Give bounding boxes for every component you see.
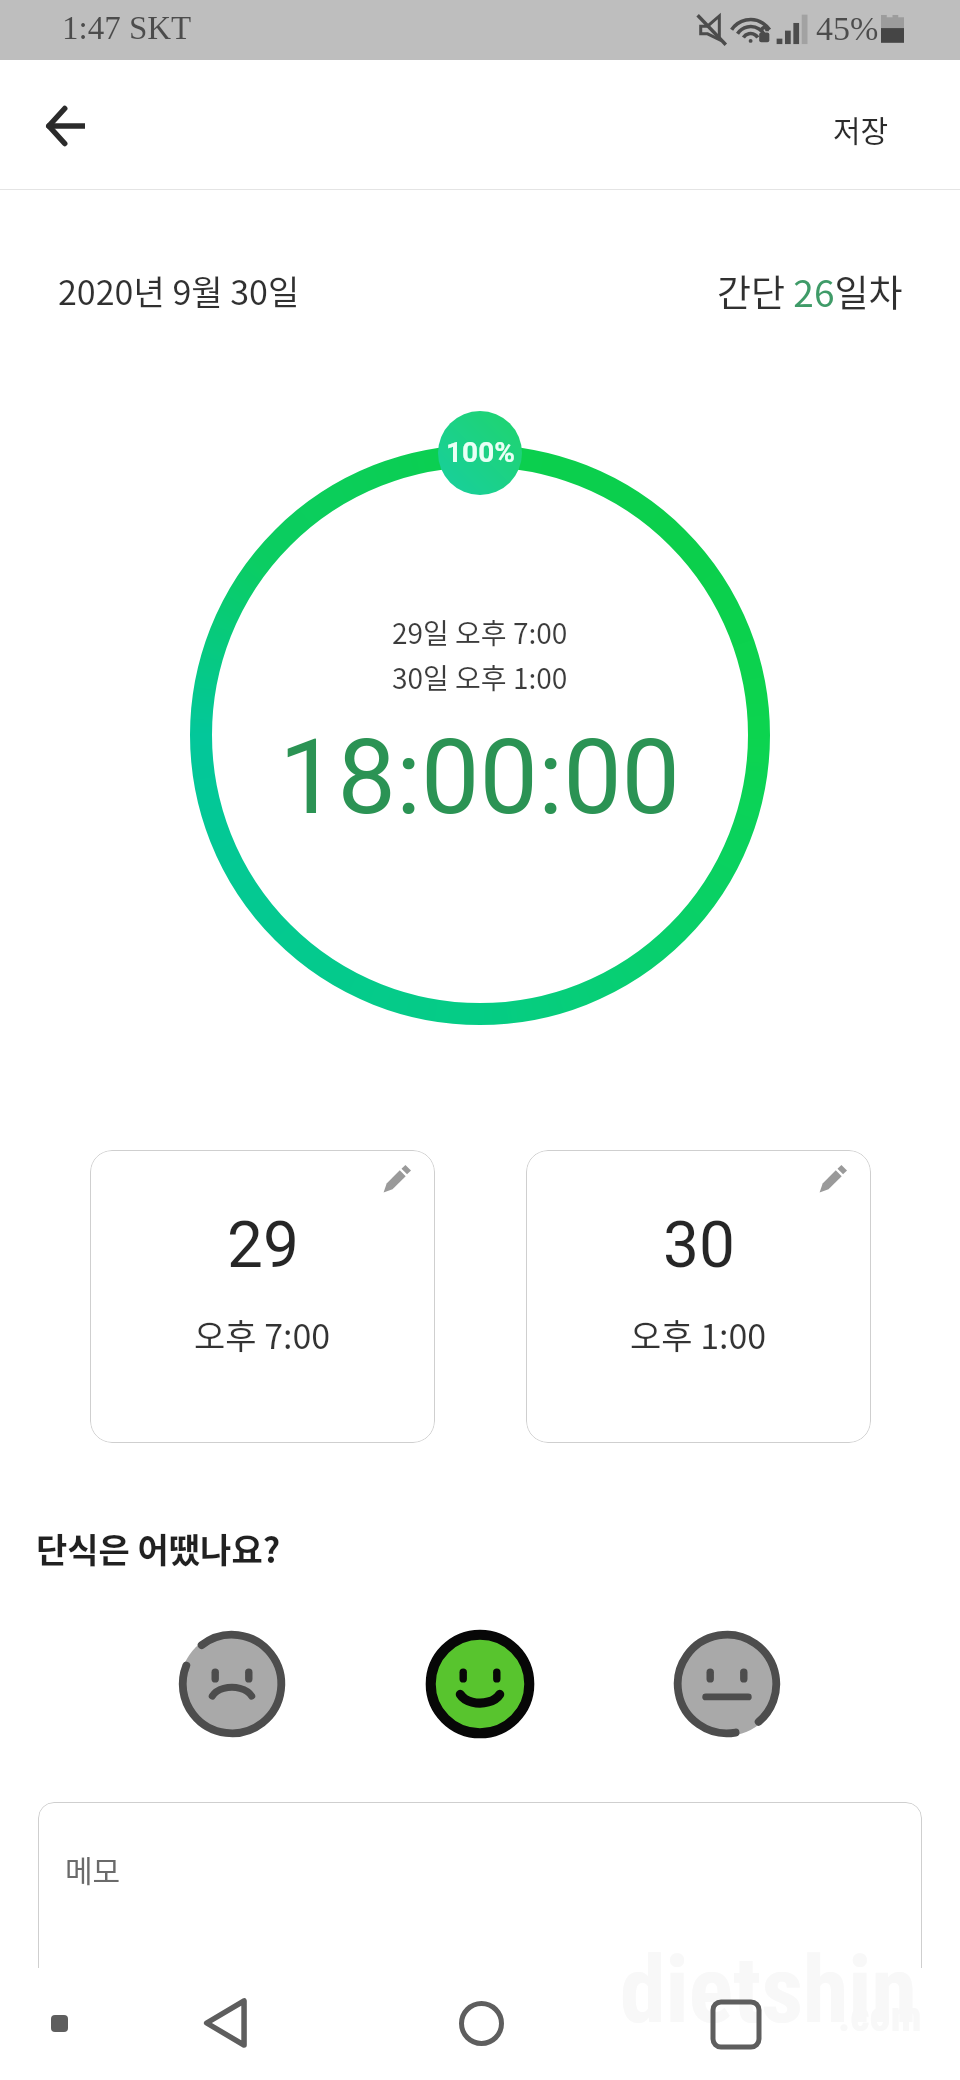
button[interactable]: Bad [176,1628,288,1740]
button[interactable]: Neutral [671,1628,783,1740]
staticText: 단식은 어땠나요? [36,1524,281,1573]
staticText: 1:47 SKT [62,10,192,47]
staticText: 18:00:00 [279,717,681,839]
button[interactable]: 저장 [809,89,913,168]
button[interactable]: Menu [31,1995,87,2051]
button[interactable]: Edit 29 오후 7:00 [90,1150,435,1443]
button[interactable]: Edit 30 오후 1:00 [526,1150,871,1443]
staticText: 오후 1:00 [630,1310,767,1359]
staticText: 2020년 9월 30일 [58,266,300,315]
button[interactable]: 메모 [38,1802,922,2080]
staticText: 45% [816,10,879,48]
staticText: 간단 26일차 [717,264,903,318]
button[interactable]: Back [27,88,103,164]
button[interactable]: Good [424,1628,536,1740]
staticText: 29일 오후 7:00 [392,612,568,653]
button[interactable]: Recents [708,1996,764,2052]
staticText: 29 [227,1208,299,1283]
staticText: 30일 오후 1:00 [392,657,568,698]
staticText: 메모 [65,1847,121,1890]
staticText: 100% [446,436,515,469]
staticText: 30 [663,1208,735,1283]
staticText: .com [838,1992,922,2041]
staticText: 저장 [833,107,889,150]
staticText: dietshin [620,1937,917,2045]
button[interactable]: Home [453,1995,509,2051]
staticText: 오후 7:00 [194,1310,331,1359]
button[interactable]: Back [198,1995,254,2051]
